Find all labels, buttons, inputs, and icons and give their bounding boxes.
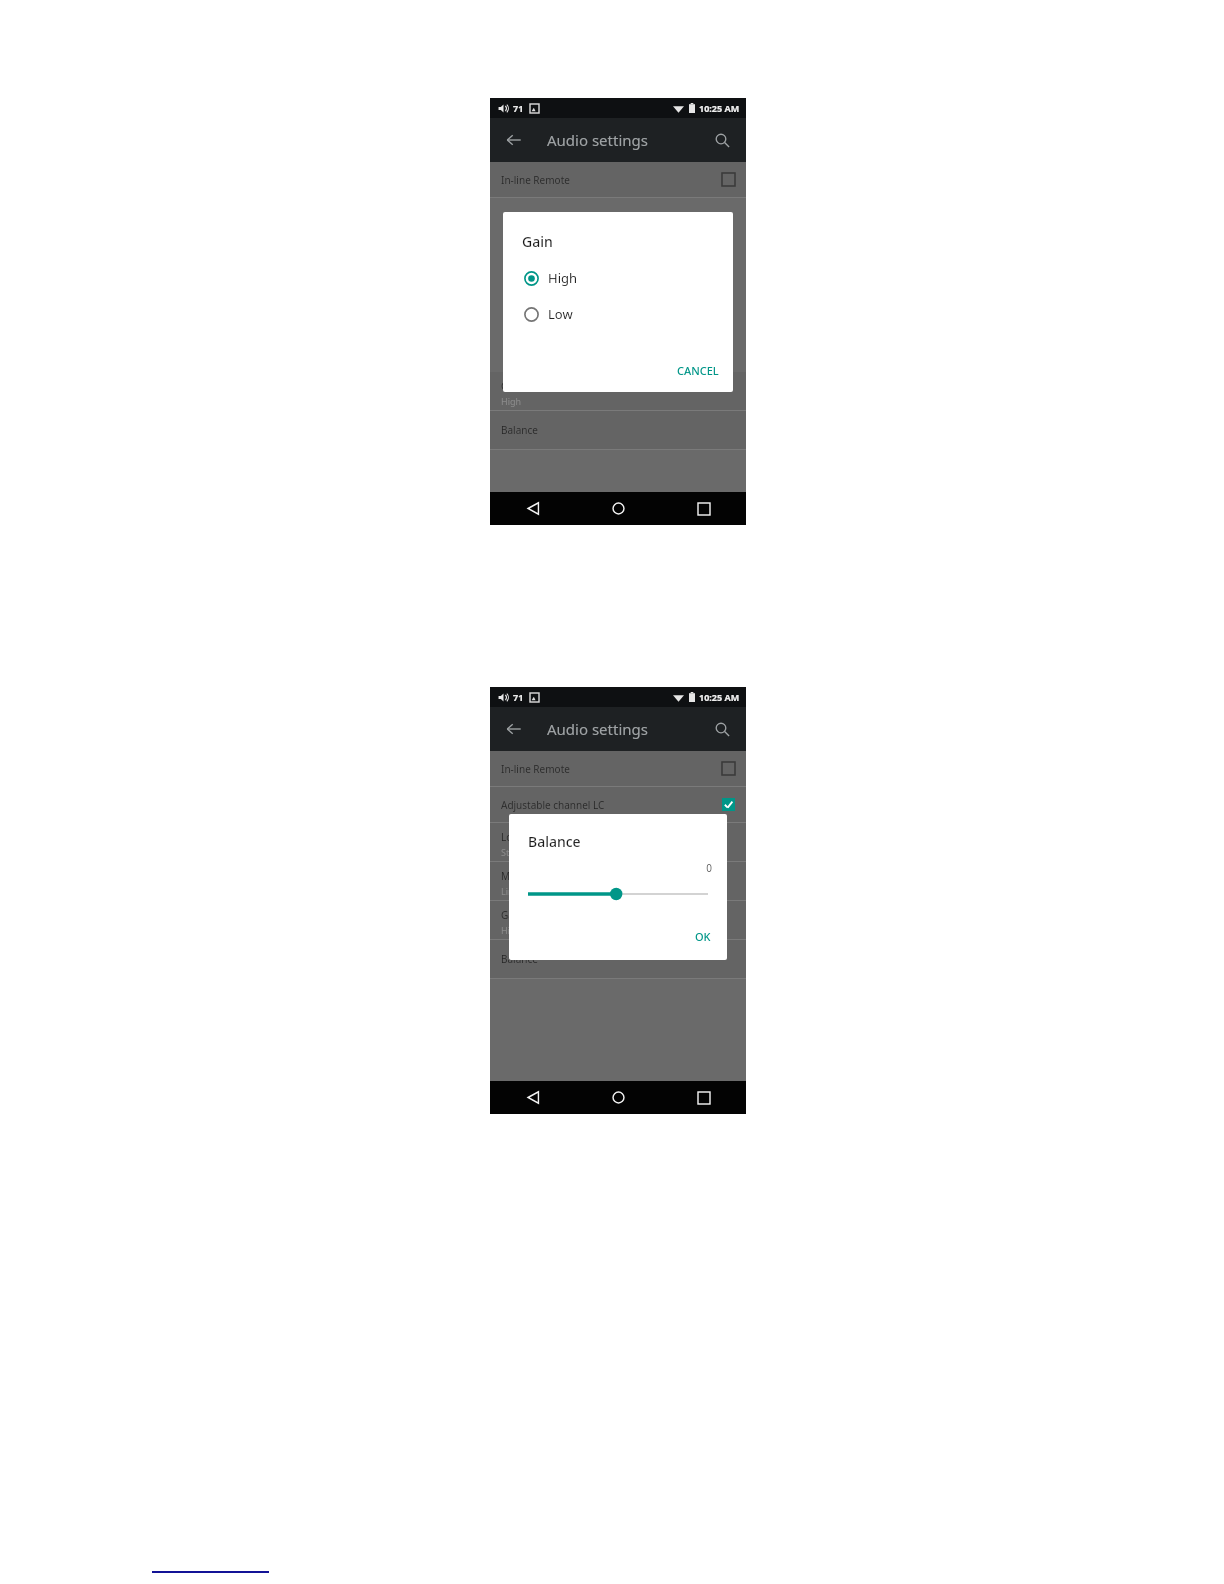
button[interactable]: Recents: [661, 492, 746, 525]
staticText: Low Pass Filter: [501, 830, 571, 844]
staticText: 0: [509, 861, 712, 875]
button[interactable]: Search: [708, 715, 736, 743]
button[interactable]: Search: [708, 126, 736, 154]
staticText: Standard: [501, 846, 540, 858]
staticText: Linear: [501, 885, 528, 897]
staticText: Balance: [528, 832, 581, 851]
button[interactable]: Balance slider: [509, 883, 727, 905]
button[interactable]: Back: [500, 126, 528, 154]
staticText: In-line Remote: [501, 173, 570, 187]
staticText: High: [501, 924, 522, 936]
button[interactable]: Adjustable channel LC: [490, 787, 746, 822]
staticText: Balance: [501, 423, 538, 437]
staticText: Audio settings: [547, 130, 648, 150]
button[interactable]: Home: [576, 1081, 661, 1114]
staticText: OK: [695, 929, 711, 944]
staticText: In-line Remote: [501, 762, 570, 776]
staticText: Adjustable channel LC: [501, 798, 605, 812]
button[interactable]: Gain: [490, 372, 746, 410]
button[interactable]: High: [503, 266, 733, 290]
button[interactable]: Back: [490, 1081, 576, 1114]
staticText: Gain: [522, 232, 553, 251]
button[interactable]: Back: [490, 492, 576, 525]
button[interactable]: In-line Remote: [490, 751, 746, 786]
button[interactable]: Low Pass Filter: [490, 823, 746, 861]
staticText: 71: [513, 102, 524, 114]
staticText: High: [501, 395, 522, 407]
button[interactable]: Low: [503, 302, 733, 326]
button[interactable]: Mid Pass Filter: [490, 862, 746, 900]
staticText: High: [548, 269, 578, 287]
button[interactable]: CANCEL: [663, 355, 733, 386]
staticText: 10:25 AM: [699, 691, 740, 703]
staticText: Mid Pass Filter: [501, 869, 569, 883]
staticText: Balance: [501, 952, 538, 966]
staticText: Gain: [501, 379, 523, 393]
button[interactable]: Recents: [661, 1081, 746, 1114]
staticText: Low: [548, 305, 573, 323]
button[interactable]: OK: [679, 921, 727, 952]
button[interactable]: Balance: [490, 940, 746, 978]
staticText: 10:25 AM: [699, 102, 740, 114]
button[interactable]: Gain: [490, 901, 746, 939]
button[interactable]: Home: [576, 492, 661, 525]
staticText: Gain: [501, 908, 523, 922]
staticText: 71: [513, 691, 524, 703]
staticText: Audio settings: [547, 719, 648, 739]
staticText: CANCEL: [677, 363, 719, 378]
button[interactable]: In-line Remote: [490, 162, 746, 197]
button[interactable]: Back: [500, 715, 528, 743]
button[interactable]: Balance: [490, 411, 746, 449]
